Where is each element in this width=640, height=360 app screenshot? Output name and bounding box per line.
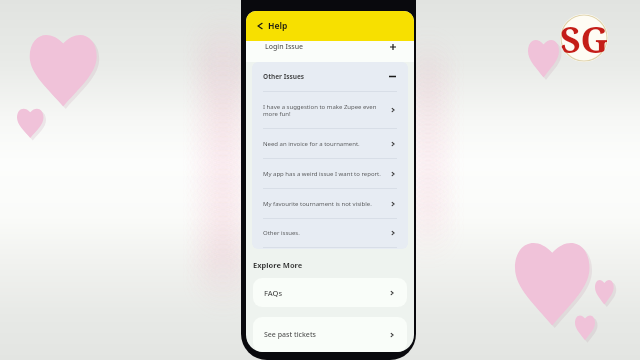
button[interactable]: Other issues.: [252, 219, 408, 247]
button[interactable]: My favourite tournament is not visible.: [252, 189, 408, 218]
button[interactable]: My app has a weird issue I want to repor…: [252, 159, 408, 188]
button[interactable]: FAQs: [253, 278, 407, 307]
button[interactable]: I have a suggestion to make Zupee even m…: [252, 92, 408, 128]
staticText: Other Issues: [263, 72, 389, 81]
button[interactable]: Need an invoice for a tournament.: [252, 129, 408, 158]
staticText: Explore More: [253, 260, 303, 270]
staticText: See past tickets: [264, 330, 389, 340]
button[interactable]: Back: [255, 21, 265, 31]
button[interactable]: See past tickets: [253, 317, 407, 352]
staticText: FAQs: [264, 288, 389, 298]
staticText: My favourite tournament is not visible.: [263, 200, 382, 208]
button[interactable]: SG channel logo: [560, 14, 608, 62]
staticText: Help: [268, 20, 288, 32]
staticText: My app has a weird issue I want to repor…: [263, 170, 382, 178]
button[interactable]: Login Issue: [246, 41, 414, 62]
staticText: I have a suggestion to make Zupee even m…: [263, 103, 382, 118]
staticText: Other issues.: [263, 229, 382, 237]
staticText: Need an invoice for a tournament.: [263, 140, 382, 148]
staticText: SG: [560, 15, 608, 62]
button[interactable]: Other Issues: [252, 62, 408, 91]
staticText: Login Issue: [265, 42, 390, 52]
